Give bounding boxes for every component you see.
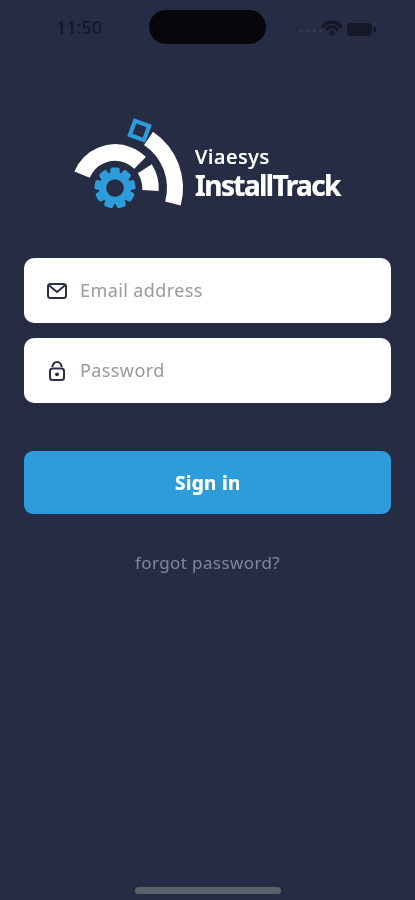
button[interactable]: Sign in xyxy=(24,451,391,514)
button[interactable]: forgot password? xyxy=(135,551,281,574)
staticText: forgot password? xyxy=(135,551,281,574)
button[interactable]: Password xyxy=(24,338,391,403)
staticText: Email address xyxy=(80,278,203,303)
staticText: InstallTrack xyxy=(195,166,340,204)
staticText: Password xyxy=(80,358,165,383)
staticText: Viaesys xyxy=(195,143,270,170)
button[interactable]: Email address xyxy=(24,258,391,323)
staticText: Sign in xyxy=(175,470,241,496)
staticText: 11:50 xyxy=(56,15,103,40)
